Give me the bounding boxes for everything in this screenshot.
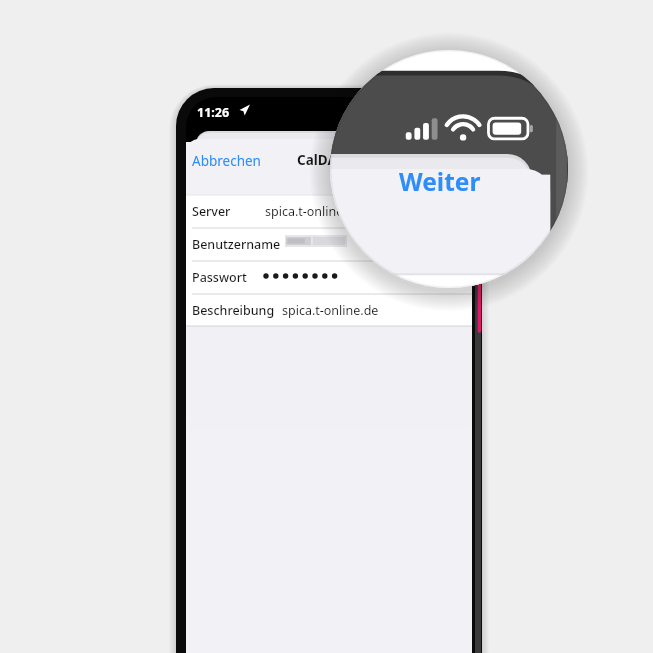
button[interactable] bbox=[186, 295, 472, 326]
button[interactable] bbox=[186, 196, 472, 228]
staticText: Beschreibung bbox=[192, 302, 275, 319]
staticText: Passwort bbox=[192, 269, 247, 286]
button[interactable]: Abbrechen bbox=[192, 152, 261, 170]
staticText: Server bbox=[192, 203, 231, 220]
staticText: CalDAV bbox=[297, 151, 345, 169]
button[interactable] bbox=[186, 229, 472, 261]
staticText: spica.t-online.de bbox=[265, 203, 362, 220]
staticText: 11:26 bbox=[197, 104, 230, 121]
staticText: spica.t-online.de bbox=[282, 302, 379, 319]
button[interactable] bbox=[186, 262, 472, 294]
button[interactable]: Weiter bbox=[399, 165, 481, 198]
staticText: Benutzername bbox=[192, 236, 281, 253]
